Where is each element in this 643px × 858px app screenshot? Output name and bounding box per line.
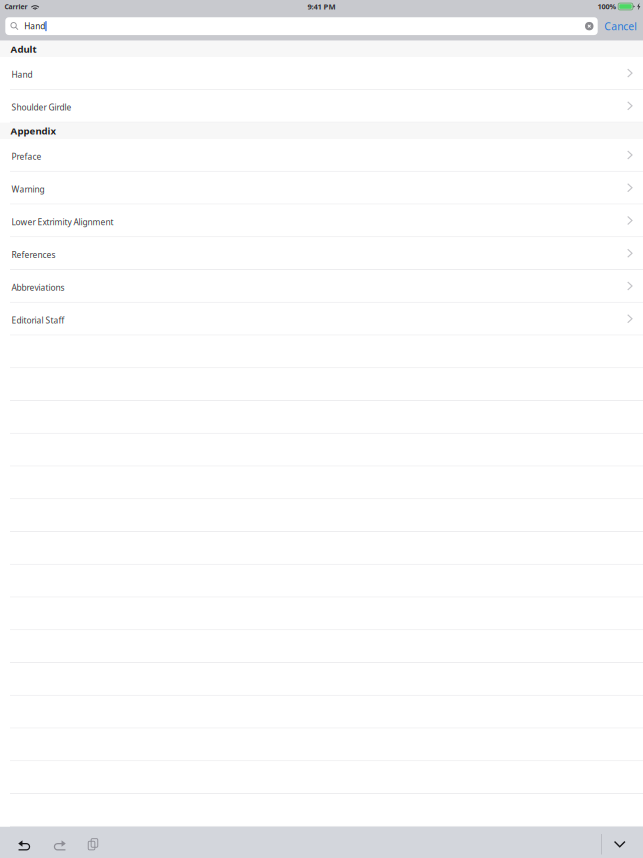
button[interactable]: Warning <box>0 172 643 205</box>
staticText: Lower Extrimity Alignment <box>11 216 113 228</box>
button[interactable]: Cancel <box>598 15 642 37</box>
button[interactable]: Undo <box>8 831 42 858</box>
button[interactable]: Hand <box>0 57 643 90</box>
staticText: Preface <box>11 151 41 162</box>
staticText: Cancel <box>604 19 637 33</box>
staticText: 9:41 PM <box>307 1 335 12</box>
button[interactable]: Hide keyboard <box>607 831 633 857</box>
staticText: References <box>11 249 55 260</box>
staticText: Adult <box>10 42 36 55</box>
staticText: 100% <box>597 1 616 11</box>
staticText: Appendix <box>10 124 56 137</box>
button[interactable]: Paste <box>76 831 110 858</box>
staticText: Hand <box>11 69 32 80</box>
staticText: Warning <box>11 183 44 195</box>
button[interactable]: Abbreviations <box>0 270 643 303</box>
button[interactable]: Preface <box>0 139 643 172</box>
button[interactable]: Editorial Staff <box>0 303 643 336</box>
staticText: Abbreviations <box>11 282 64 293</box>
button[interactable]: Shoulder Girdle <box>0 90 643 123</box>
staticText: Editorial Staff <box>11 314 64 326</box>
staticText: Shoulder Girdle <box>11 102 71 113</box>
button[interactable]: References <box>0 237 643 270</box>
staticText: Hand <box>24 20 45 32</box>
staticText: Carrier <box>4 2 27 11</box>
button[interactable]: Redo <box>42 831 76 858</box>
button[interactable]: Lower Extrimity Alignment <box>0 204 643 237</box>
